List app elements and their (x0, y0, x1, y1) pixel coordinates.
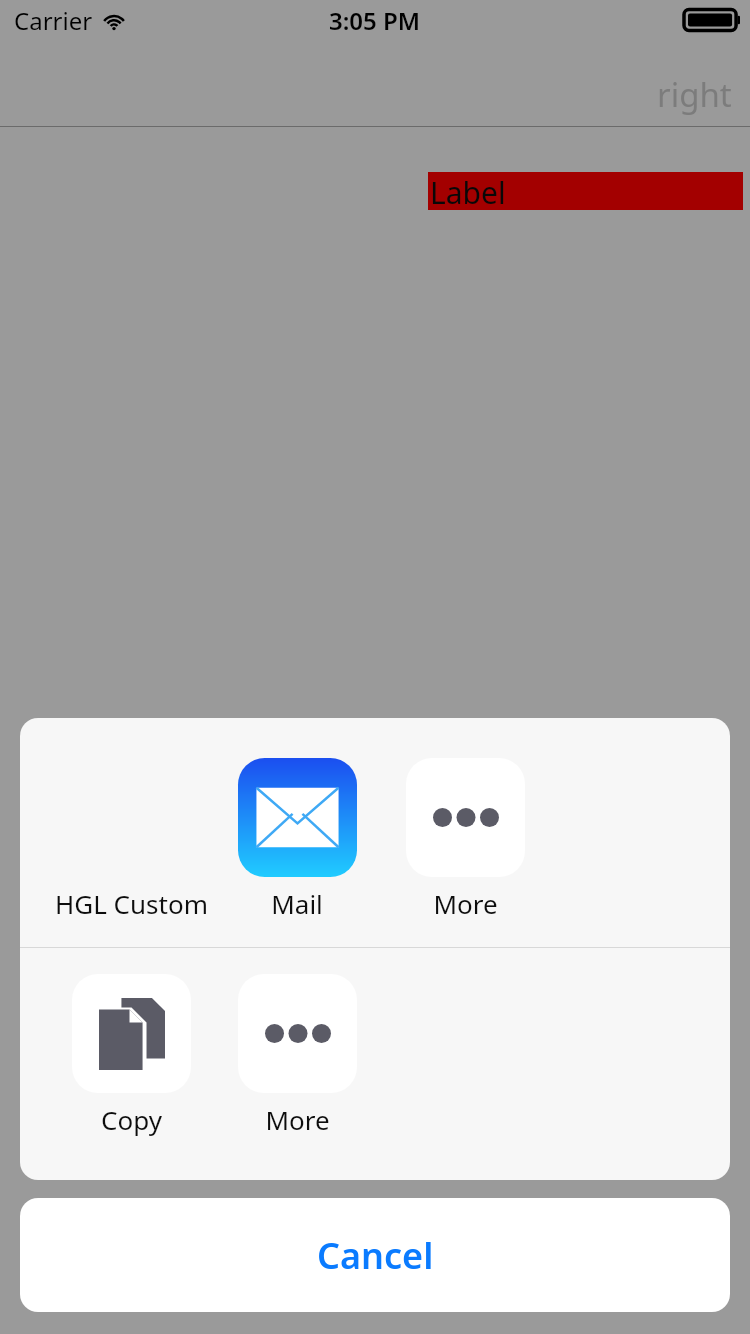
staticText: More (433, 886, 498, 921)
staticText: Cancel (317, 1231, 434, 1280)
button[interactable]: HGL Custom (44, 758, 218, 921)
staticText: Copy (101, 1102, 162, 1137)
staticText: Mail (271, 886, 323, 921)
staticText: Carrier (14, 4, 93, 37)
button[interactable]: Mail (210, 758, 384, 921)
staticText: 3:05 PM (329, 4, 421, 37)
button[interactable]: More (378, 758, 552, 921)
button[interactable]: Copy (44, 974, 218, 1137)
button[interactable]: Cancel (20, 1198, 730, 1312)
staticText: More (265, 1102, 330, 1137)
staticText: HGL Custom (55, 886, 208, 921)
staticText: Label (430, 172, 506, 210)
button[interactable]: right (651, 68, 738, 121)
staticText: right (657, 72, 732, 117)
button[interactable]: More (210, 974, 384, 1137)
